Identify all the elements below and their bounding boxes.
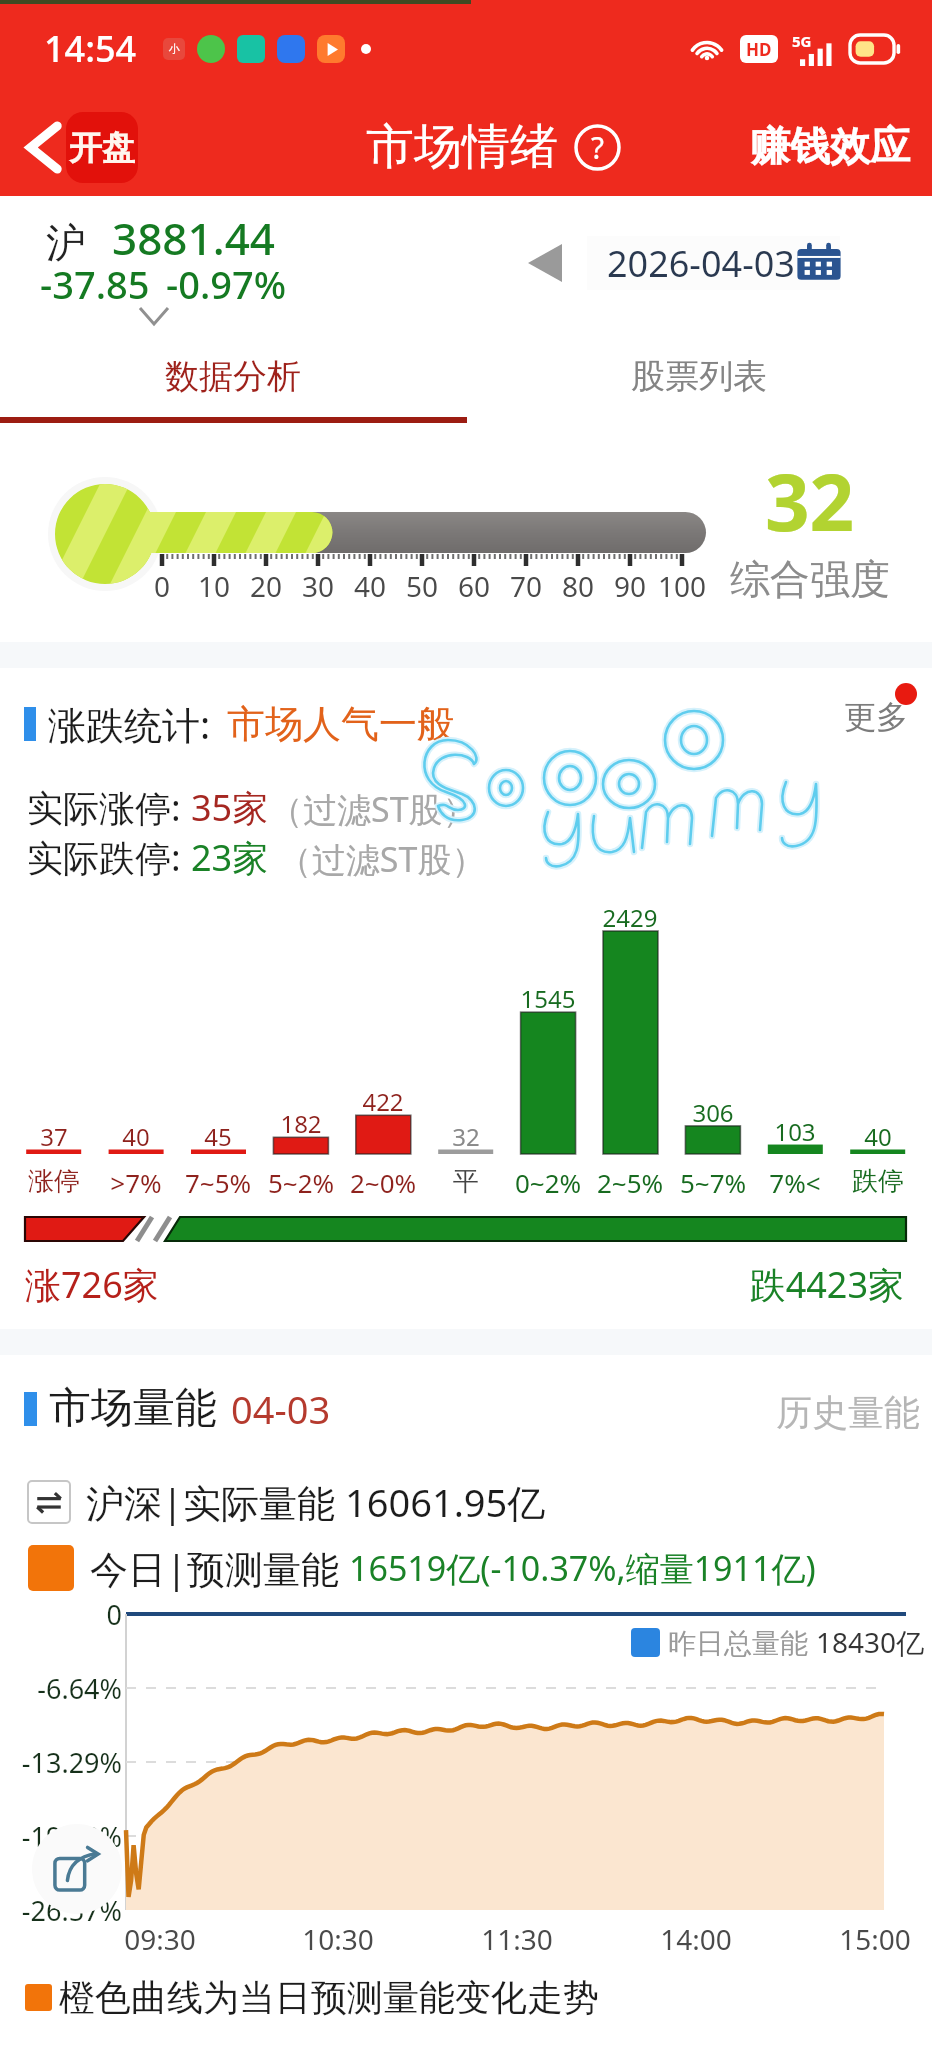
button[interactable]: 数据分析 (0, 336, 466, 417)
staticText: 1545 (507, 982, 589, 1015)
staticText: 40 (330, 567, 410, 605)
staticText: 实际跌停: (27, 833, 191, 882)
staticText: 7%< (754, 1165, 836, 1200)
staticText: 平 (425, 1165, 507, 1198)
staticText: -6.64% (0, 1670, 122, 1707)
staticText: 5G (792, 31, 812, 51)
staticText: 跌停 (837, 1165, 919, 1198)
staticText: 90 (590, 567, 670, 605)
staticText: 32 (425, 1120, 507, 1153)
staticText: 15:00 (815, 1920, 932, 1958)
staticText: 103 (754, 1115, 836, 1148)
button[interactable]: 返回开盘 (19, 106, 144, 189)
staticText: ? (591, 127, 605, 168)
button[interactable]: 更多 (840, 693, 912, 741)
staticText: HD (746, 38, 772, 61)
button[interactable]: 赚钱效应 (750, 121, 910, 171)
staticText: 30 (278, 567, 358, 605)
staticText: 橙色曲线为当日预测量能变化走势 (59, 1975, 599, 2020)
staticText: 40 (837, 1120, 919, 1153)
staticText: 市场情绪 (366, 117, 558, 177)
staticText: 14:54 (44, 24, 137, 73)
staticText: 综合强度 (730, 554, 890, 604)
staticText: 20 (226, 567, 306, 605)
staticText: 35家 (191, 783, 269, 832)
button[interactable]: 股票列表 (466, 336, 932, 417)
staticText: 5~2% (260, 1165, 342, 1200)
staticText: 5~7% (672, 1165, 754, 1200)
staticText: -13.29% (0, 1744, 122, 1781)
staticText: （过滤ST股） (269, 786, 477, 832)
staticText: 32 (765, 448, 855, 554)
staticText: 涨726家 (25, 1260, 159, 1309)
staticText: 昨日总量能 (668, 1623, 816, 1661)
button[interactable]: 2026-04-03 (587, 236, 840, 290)
button[interactable]: 历史量能 (772, 1386, 924, 1439)
staticText: 16519亿(-10.37%,缩量1911亿) (349, 1545, 816, 1591)
staticText: 跌4423家 (600, 1260, 904, 1309)
staticText: 422 (342, 1085, 424, 1118)
staticText: 100 (642, 567, 722, 605)
staticText: 80 (538, 567, 618, 605)
staticText: 2026-04-03 (607, 239, 795, 288)
staticText: 今日|预测量能 (90, 1542, 349, 1594)
staticText: 0~2% (507, 1165, 589, 1200)
staticText: 2~0% (342, 1165, 424, 1200)
staticText: 14:00 (636, 1920, 756, 1958)
staticText: >7% (95, 1165, 177, 1200)
staticText: -0.97% (166, 258, 287, 310)
staticText: -26.57% (0, 1892, 122, 1929)
staticText: 更多 (844, 697, 908, 737)
staticText: 37 (13, 1120, 95, 1153)
staticText: 182 (260, 1107, 342, 1140)
staticText: 实际涨停: (27, 783, 191, 832)
staticText: 7~5% (177, 1165, 259, 1200)
staticText: 2429 (589, 901, 671, 934)
staticText: 45 (177, 1120, 259, 1153)
staticText: 沪 (46, 218, 86, 268)
staticText: 数据分析 (165, 355, 301, 398)
staticText: 沪深|实际量能 (86, 1476, 345, 1528)
staticText: 市场人气一般 (227, 700, 455, 748)
staticText: （过滤ST股） (269, 836, 486, 882)
staticText: 涨跌统计: (48, 698, 211, 750)
staticText: 16061.95亿 (345, 1476, 546, 1528)
staticText: 历史量能 (776, 1390, 920, 1435)
staticText: 10 (174, 567, 254, 605)
staticText: 60 (434, 567, 514, 605)
staticText: 50 (382, 567, 462, 605)
button[interactable]: 分享 (32, 1824, 122, 1914)
staticText: 市场量能 (49, 1382, 217, 1435)
staticText: 70 (486, 567, 566, 605)
staticText: 40 (95, 1120, 177, 1153)
staticText: 小 (169, 42, 180, 56)
staticText: 0 (0, 1596, 122, 1633)
staticText: 涨停 (13, 1165, 95, 1198)
staticText: 0 (122, 567, 202, 605)
staticText: 23家 (191, 833, 269, 882)
staticText: 09:30 (100, 1920, 220, 1958)
staticText: -19.93% (0, 1818, 122, 1855)
button[interactable]: 市场情绪 (366, 117, 621, 177)
staticText: 11:30 (457, 1920, 577, 1958)
button[interactable]: 前一天 (528, 244, 562, 282)
staticText: 04-03 (231, 1383, 331, 1435)
staticText: 2~5% (589, 1165, 671, 1200)
staticText: 18430亿 (816, 1623, 925, 1661)
staticText: 10:30 (278, 1920, 398, 1958)
staticText: 开盘 (67, 127, 137, 169)
staticText: 306 (672, 1096, 754, 1129)
staticText: -37.85 (40, 258, 150, 310)
staticText: 3881.44 (112, 208, 275, 268)
staticText: 股票列表 (631, 355, 767, 398)
